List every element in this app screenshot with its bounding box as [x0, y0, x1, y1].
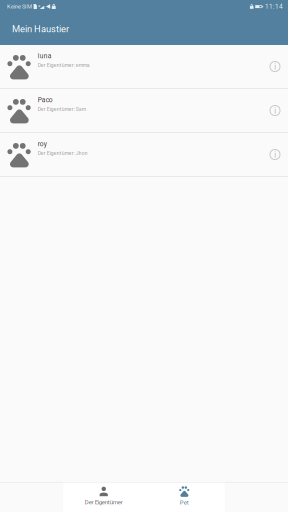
- staticText: Der Eigentümer: emma: [38, 62, 90, 68]
- button[interactable]: Der Eigentümer: [63, 482, 144, 512]
- staticText: Keine SIM: [7, 3, 32, 10]
- staticText: luna: [38, 52, 52, 60]
- staticText: roy: [38, 140, 47, 148]
- button[interactable]: roy: [0, 133, 288, 177]
- staticText: Der Eigentümer: Sam: [38, 106, 86, 112]
- staticText: i: [274, 105, 276, 116]
- staticText: Der Eigentümer: Jhon: [38, 150, 88, 156]
- staticText: Pet: [180, 499, 189, 506]
- staticText: 11:14: [265, 3, 283, 10]
- staticText: Mein Haustier: [12, 23, 69, 34]
- staticText: i: [274, 61, 276, 72]
- staticText: Der Eigentümer: [85, 499, 123, 506]
- button[interactable]: Pet: [144, 482, 224, 512]
- button[interactable]: luna: [0, 45, 288, 89]
- staticText: Paco: [38, 96, 53, 104]
- button[interactable]: Paco: [0, 89, 288, 133]
- staticText: i: [274, 149, 276, 160]
